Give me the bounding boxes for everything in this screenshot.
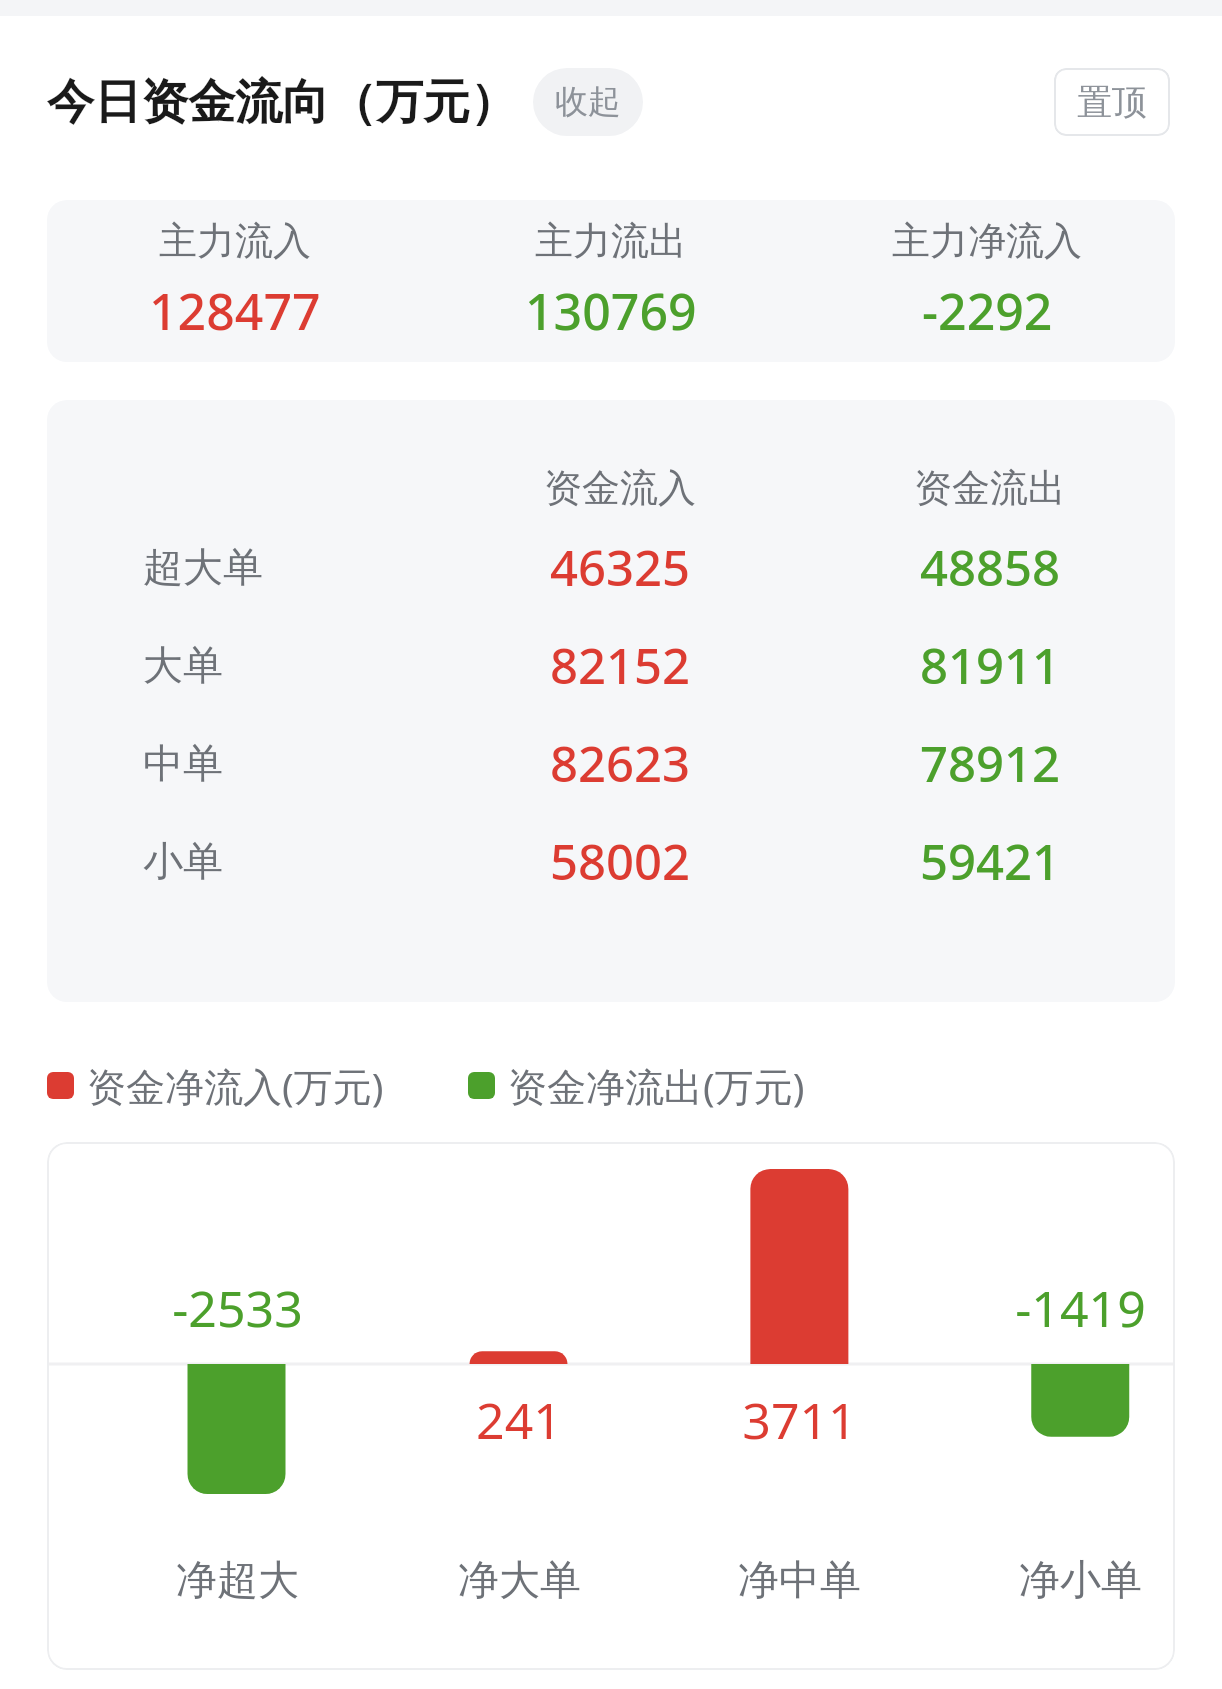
button[interactable]: 小单 [47,812,1175,910]
staticText: 小单 [143,836,223,886]
staticText: 82152 [550,632,691,699]
staticText: 82623 [550,730,691,797]
staticText: 净中单 [738,1555,861,1607]
staticText: 净小单 [1019,1555,1142,1607]
button[interactable]: 中单 [47,714,1175,812]
staticText: 59421 [920,828,1061,895]
button[interactable]: 大单 [47,616,1175,714]
staticText: 资金净流入(万元) [87,1059,384,1112]
staticText: 58002 [550,828,691,895]
button[interactable]: 主力流入 [47,200,1175,362]
staticText: 81911 [920,632,1061,699]
staticText: 主力流入 [159,217,311,265]
staticText: 130769 [525,277,697,345]
staticText: 超大单 [143,542,263,592]
staticText: 资金净流出(万元) [508,1059,805,1112]
staticText: 中单 [143,738,223,788]
staticText: 48858 [920,534,1061,601]
staticText: 主力流出 [535,217,687,265]
staticText: 大单 [143,640,223,690]
staticText: 资金流出 [914,464,1066,512]
button[interactable]: 资金净流入(万元) [47,1059,384,1112]
staticText: 净超大 [176,1555,299,1607]
button[interactable]: 置顶 [1054,68,1170,136]
staticText: 128477 [149,277,321,345]
staticText: 净大单 [458,1555,581,1607]
staticText: 78912 [920,730,1061,797]
button[interactable]: 收起 [533,68,643,136]
staticText: 3711 [742,1386,857,1454]
button[interactable]: 主力流出 [423,200,799,362]
staticText: 收起 [555,81,621,123]
staticText: 主力净流入 [892,217,1082,265]
button[interactable]: 主力净流入 [799,200,1175,362]
button[interactable]: 超大单 [47,518,1175,616]
staticText: 今日资金流向（万元） [47,73,517,132]
staticText: 241 [476,1386,562,1454]
other: 资金净流向柱状图 [47,1142,1175,1670]
button[interactable]: 主力流入 [47,200,423,362]
staticText: 资金流入 [544,464,696,512]
button[interactable]: 资金净流向柱状图 [47,1142,1175,1670]
staticText: 46325 [550,534,691,601]
staticText: -2292 [922,277,1053,345]
staticText: -2533 [172,1274,303,1342]
button[interactable]: 资金净流出(万元) [468,1059,805,1112]
staticText: -1419 [1015,1274,1146,1342]
staticText: 置顶 [1077,80,1147,124]
